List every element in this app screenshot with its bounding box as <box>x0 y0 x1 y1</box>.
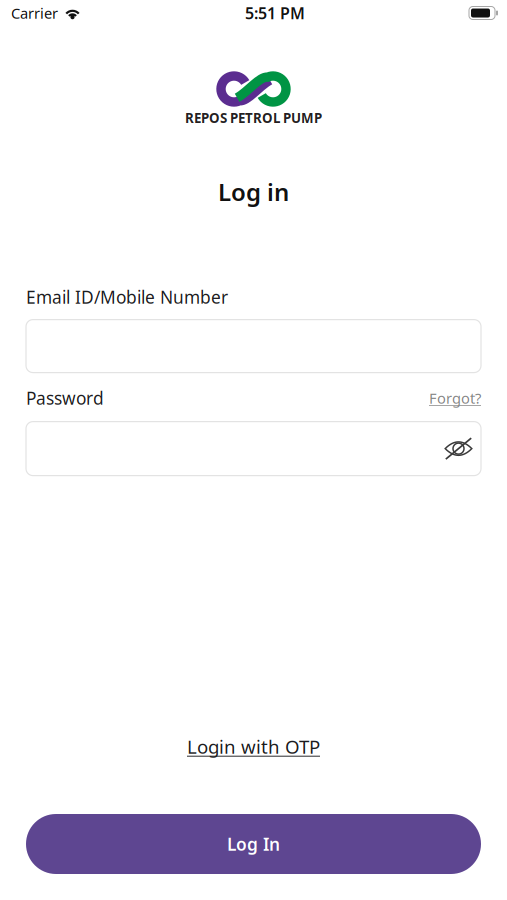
staticText: Carrier <box>11 3 58 23</box>
button[interactable]: Forgot? <box>429 388 481 408</box>
staticText: Log in <box>218 176 289 208</box>
staticText: 5:51 PM <box>245 2 305 24</box>
staticText: Password <box>26 387 104 410</box>
button[interactable]: Log In <box>26 814 481 874</box>
staticText: Log In <box>227 832 280 855</box>
staticText: Login with OTP <box>187 734 320 759</box>
button[interactable]: Show password <box>444 436 473 461</box>
staticText: Forgot? <box>429 388 481 408</box>
staticText: REPOS PETROL PUMP <box>185 109 322 127</box>
staticText: Email ID/Mobile Number <box>26 286 228 309</box>
button[interactable]: Login with OTP <box>187 734 320 759</box>
